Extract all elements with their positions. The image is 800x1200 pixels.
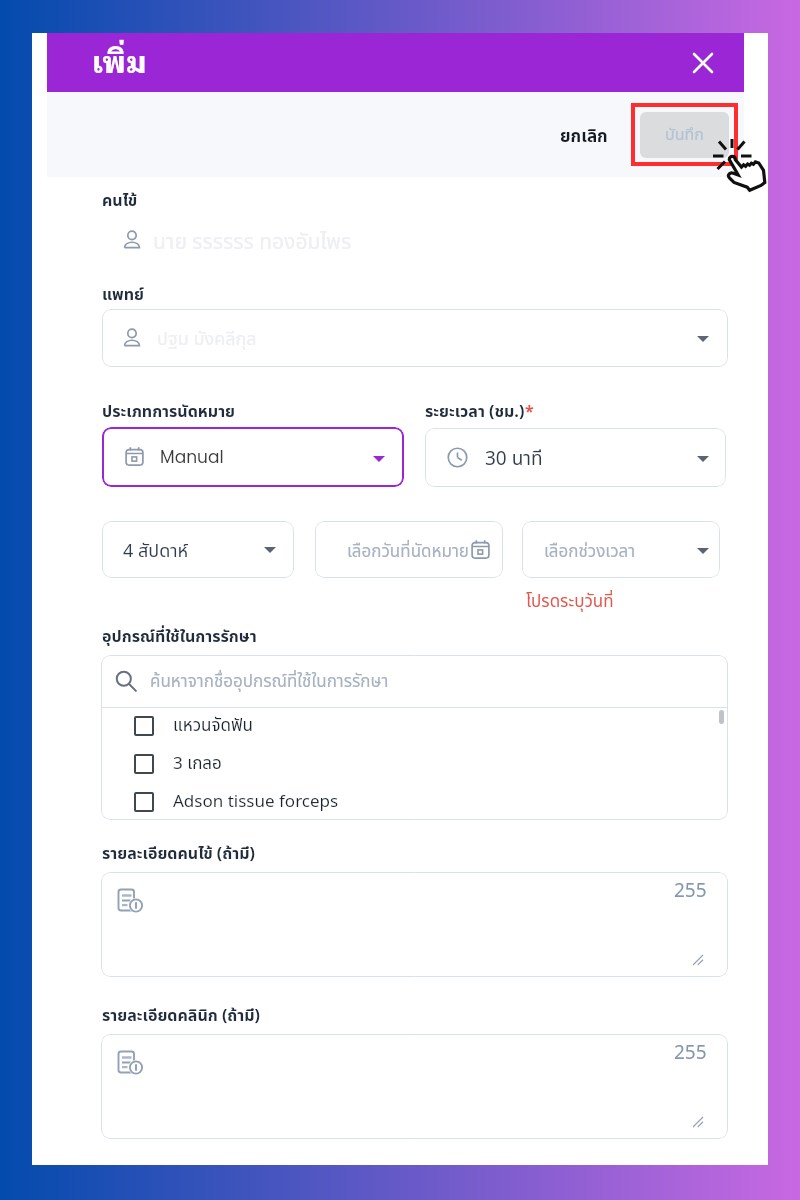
staticText: * bbox=[525, 400, 534, 424]
button[interactable]: 255 bbox=[101, 872, 728, 977]
button[interactable]: เลือกช่วงเวลา bbox=[522, 521, 720, 578]
staticText: Adson tissue forceps bbox=[173, 789, 339, 815]
button[interactable]: 30 นาที bbox=[425, 428, 726, 487]
button[interactable]: 4 สัปดาห์ bbox=[102, 521, 294, 578]
staticText: คนไข้ bbox=[102, 189, 138, 213]
staticText: 255 bbox=[674, 877, 707, 906]
button[interactable]: เลือกวันที่นัดหมาย bbox=[315, 521, 503, 578]
staticText: เลือกวันที่นัดหมาย bbox=[347, 539, 469, 565]
staticText: 30 นาที bbox=[485, 445, 543, 474]
button[interactable]: แหวนจัดฟัน bbox=[101, 707, 728, 745]
button[interactable]: ยกเลิก bbox=[551, 121, 617, 152]
staticText: ค้นหาจากชื่ออุปกรณ์ที่ใช้ในการรักษา bbox=[150, 669, 389, 695]
button[interactable]: 255 bbox=[101, 1034, 728, 1139]
staticText: นาย รรรรรร ทองอัมไพร bbox=[153, 227, 352, 259]
button[interactable]: ปฐม มังคลีกุล bbox=[102, 309, 728, 367]
staticText: โปรดระบุวันที่ bbox=[526, 589, 614, 615]
button[interactable]: บันทึก bbox=[640, 112, 729, 158]
staticText: รายละเอียดคนไข้ (ถ้ามี) bbox=[102, 842, 255, 866]
staticText: แพทย์ bbox=[102, 283, 144, 307]
staticText: ยกเลิก bbox=[560, 124, 608, 150]
staticText: 3 เกลอ bbox=[173, 751, 222, 777]
button[interactable]: Adson tissue forceps bbox=[101, 783, 728, 820]
staticText: Manual bbox=[160, 445, 224, 469]
button[interactable]: Close dialog bbox=[689, 49, 717, 77]
staticText: อุปกรณ์ที่ใช้ในการรักษา bbox=[102, 625, 257, 649]
button[interactable]: Search equipment bbox=[115, 670, 137, 692]
staticText: เพิ่ม bbox=[92, 40, 147, 90]
staticText: รายละเอียดคลินิก (ถ้ามี) bbox=[102, 1004, 261, 1028]
staticText: 255 bbox=[674, 1039, 707, 1068]
staticText: แหวนจัดฟัน bbox=[173, 713, 253, 739]
staticText: เลือกช่วงเวลา bbox=[544, 539, 636, 565]
staticText: ระยะเวลา (ชม.) bbox=[425, 400, 525, 424]
staticText: ปฐม มังคลีกุล bbox=[157, 326, 257, 353]
staticText: 4 สัปดาห์ bbox=[123, 538, 189, 565]
staticText: ประเภทการนัดหมาย bbox=[102, 400, 236, 424]
button[interactable]: Manual bbox=[102, 427, 404, 487]
staticText: บันทึก bbox=[665, 123, 704, 147]
button[interactable]: 3 เกลอ bbox=[101, 745, 728, 783]
